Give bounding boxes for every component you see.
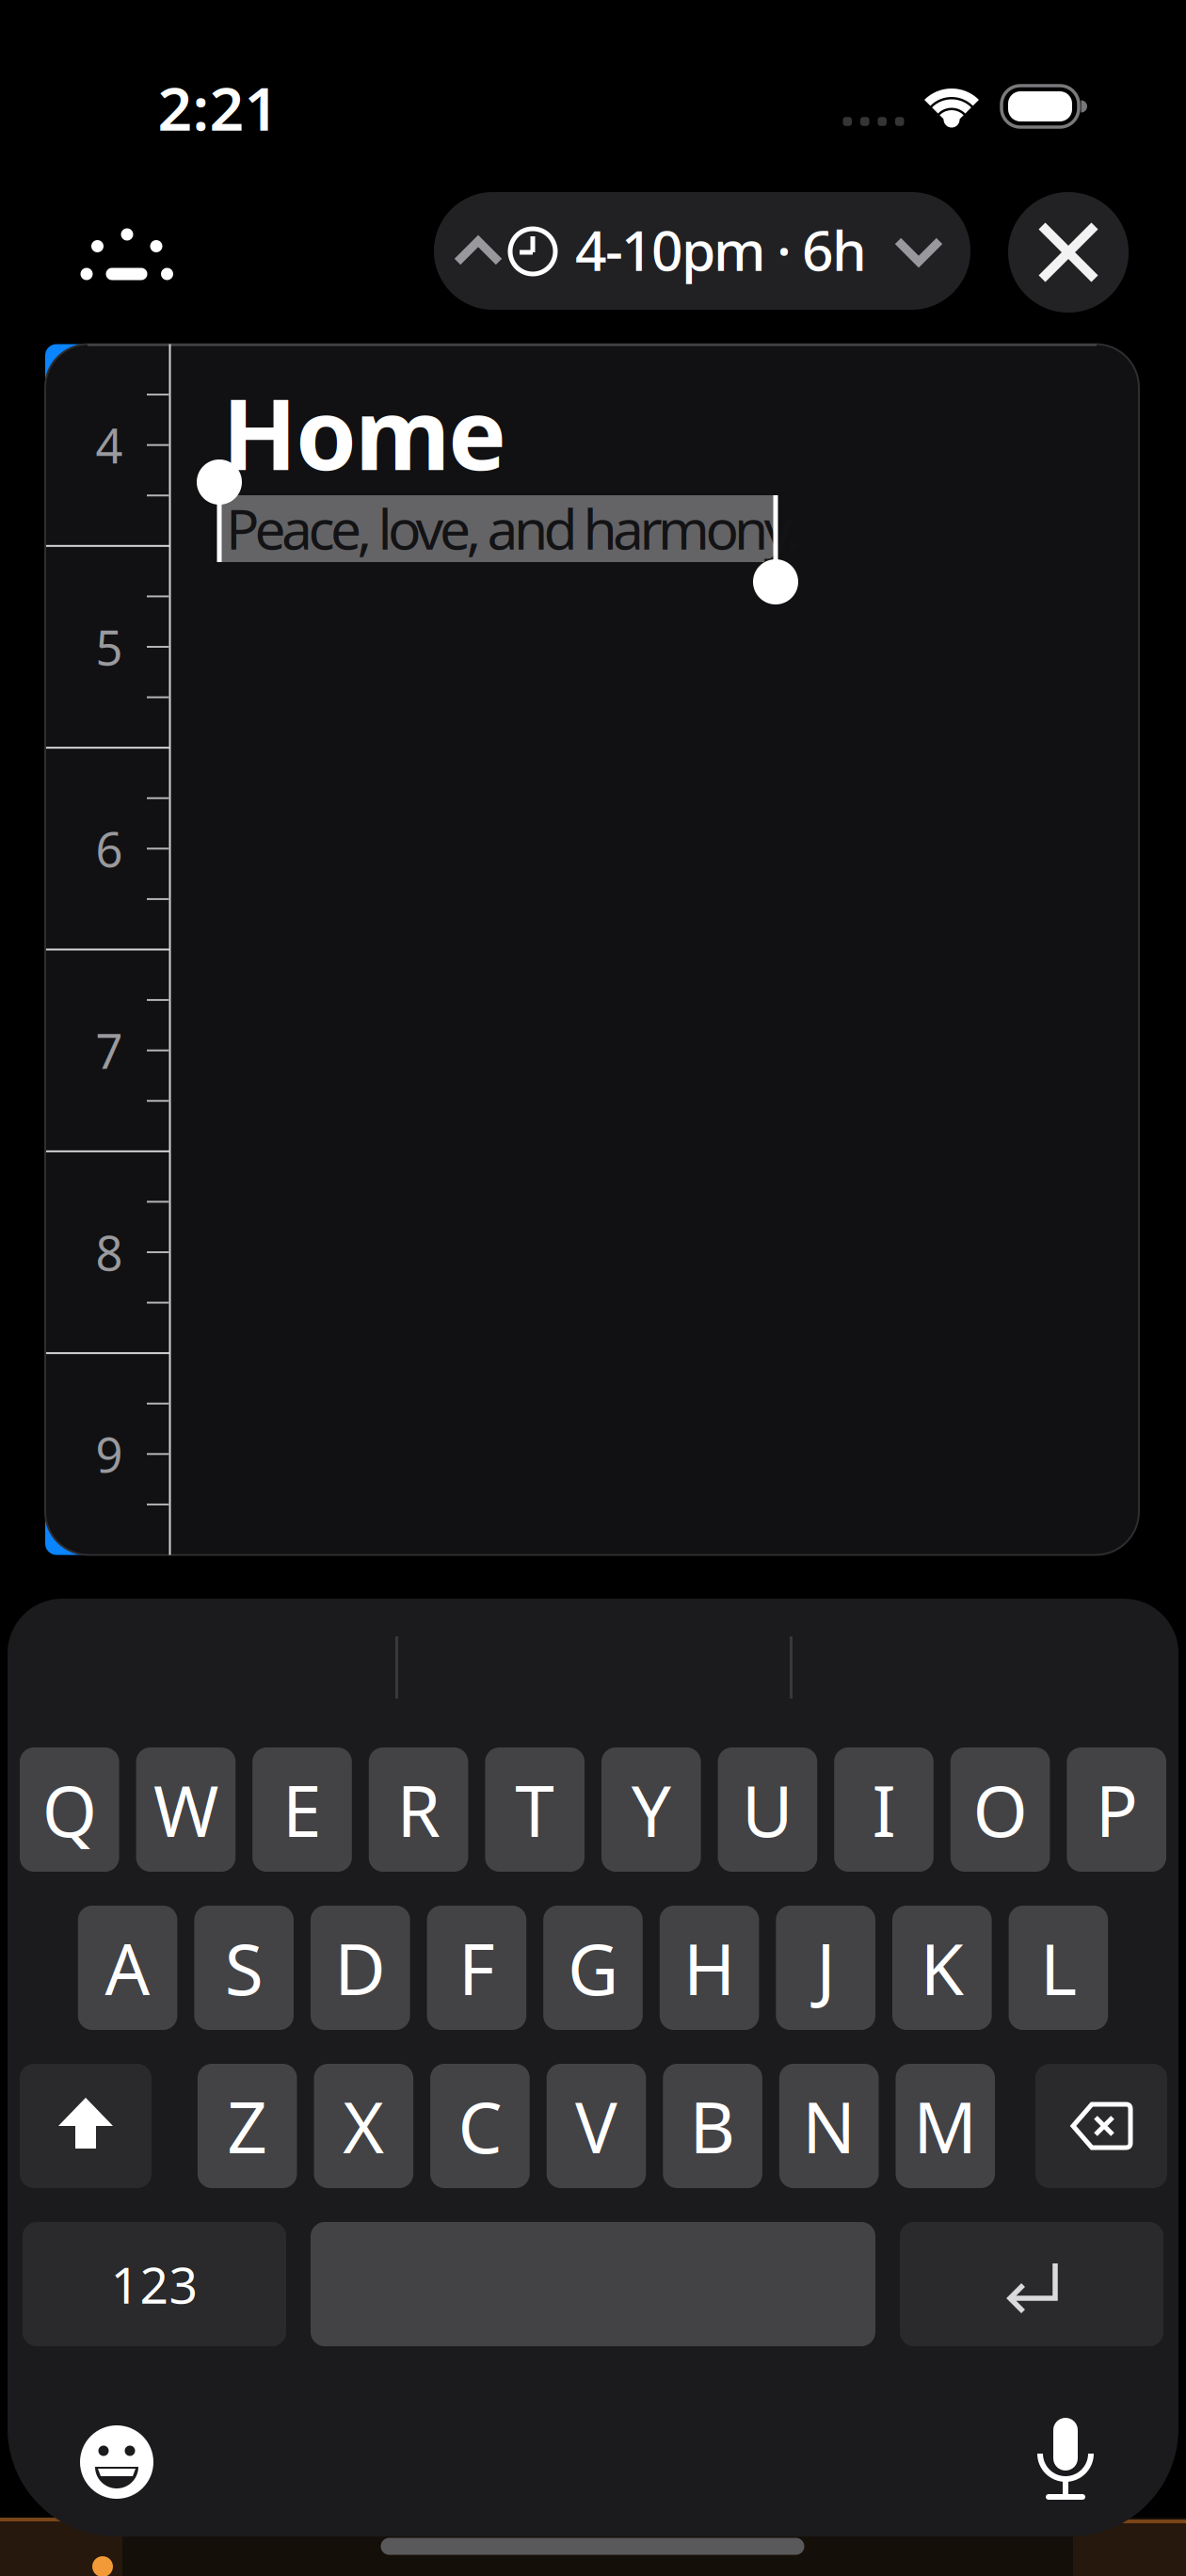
staticText: T [515,1763,555,1856]
button[interactable]: R [369,1747,468,1872]
button[interactable]: Return [900,2222,1163,2346]
button[interactable]: L [1009,1906,1108,2030]
button[interactable]: K [892,1906,992,2030]
staticText: N [802,2079,856,2173]
button[interactable]: 123 [23,2222,286,2346]
staticText: 4 [96,413,123,477]
button[interactable]: Emoji [80,2425,153,2499]
button[interactable]: Dictate [1024,2416,1107,2499]
staticText: U [742,1763,793,1856]
staticText: 8 [96,1220,123,1284]
staticText: E [282,1763,322,1856]
staticText: W [153,1763,218,1856]
button[interactable]: M [896,2064,995,2188]
staticText: 9 [96,1422,123,1486]
staticText: Peace, love, and harmony. [226,491,801,565]
staticText: C [458,2079,502,2173]
staticText: O [973,1763,1027,1856]
button[interactable]: X [314,2064,413,2188]
staticText: D [334,1921,386,2014]
staticText: K [920,1921,964,2014]
staticText: L [1040,1921,1077,2014]
staticText: 6 [96,817,123,880]
staticText: Q [42,1763,97,1856]
staticText: Y [631,1763,671,1856]
button[interactable]: Close [1008,192,1129,313]
staticText: 2:21 [158,67,279,147]
button[interactable]: Later [0,0,1186,2576]
button[interactable]: I [834,1747,934,1872]
button[interactable]: B [663,2064,762,2188]
staticText: 5 [96,615,123,679]
button[interactable]: Z [198,2064,297,2188]
button[interactable]: T [485,1747,585,1872]
button[interactable]: J [776,1906,875,2030]
button[interactable]: G [543,1906,643,2030]
staticText: 7 [96,1019,123,1082]
button[interactable]: W [136,1747,236,1872]
staticText: V [575,2079,617,2173]
button[interactable]: Shift [20,2064,152,2188]
button[interactable]: D [311,1906,410,2030]
staticText: A [105,1921,150,2014]
button[interactable]: S [194,1906,294,2030]
staticText: H [683,1921,735,2014]
button[interactable]: Y [601,1747,701,1872]
staticText: I [872,1763,896,1856]
button[interactable]: Menu [0,0,1186,2576]
staticText: R [397,1763,440,1856]
button[interactable]: H [660,1906,759,2030]
staticText: P [1095,1763,1138,1856]
staticText: M [913,2079,977,2173]
button[interactable]: A [78,1906,177,2030]
staticText: J [816,1921,835,2014]
button[interactable]: 4-10pm · 6h [0,0,1186,2576]
staticText: Home [222,367,506,497]
button[interactable]: Earlier [0,0,1186,2576]
staticText: F [458,1921,495,2014]
staticText: 123 [111,2251,198,2317]
button[interactable]: P [1067,1747,1166,1872]
staticText: Z [227,2079,268,2173]
button[interactable]: E [252,1747,352,1872]
button[interactable]: V [547,2064,646,2188]
button[interactable]: F [427,1906,526,2030]
staticText: 4-10pm · 6h [575,213,867,286]
button[interactable]: O [950,1747,1050,1872]
staticText: X [343,2079,384,2173]
staticText: S [225,1921,263,2014]
button[interactable]: Delete [1035,2064,1167,2188]
staticText: B [690,2079,736,2173]
staticText: G [568,1921,618,2014]
button[interactable]: C [430,2064,530,2188]
button[interactable]: U [718,1747,817,1872]
button[interactable]: Q [20,1747,119,1872]
button[interactable]: N [779,2064,879,2188]
